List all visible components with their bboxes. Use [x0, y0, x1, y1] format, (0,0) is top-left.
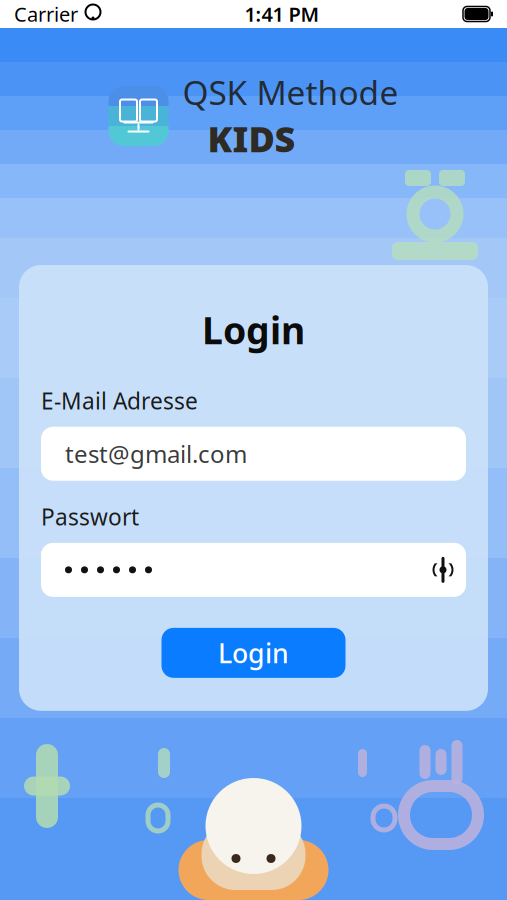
staticText: QSK Methode	[182, 70, 398, 114]
button[interactable]: test@gmail.com	[41, 427, 466, 481]
staticText: E-Mail Adresse	[41, 386, 198, 416]
staticText: KIDS	[207, 114, 295, 162]
button[interactable]: Show password	[420, 543, 466, 597]
staticText: Passwort	[41, 502, 139, 532]
staticText: Carrier	[14, 1, 78, 27]
button[interactable]	[41, 543, 420, 597]
button[interactable]: Login	[161, 628, 345, 678]
staticText: test@gmail.com	[65, 438, 247, 470]
staticText: Login	[218, 635, 289, 670]
staticText: 1:41 PM	[244, 1, 319, 27]
staticText: Login	[202, 305, 305, 355]
